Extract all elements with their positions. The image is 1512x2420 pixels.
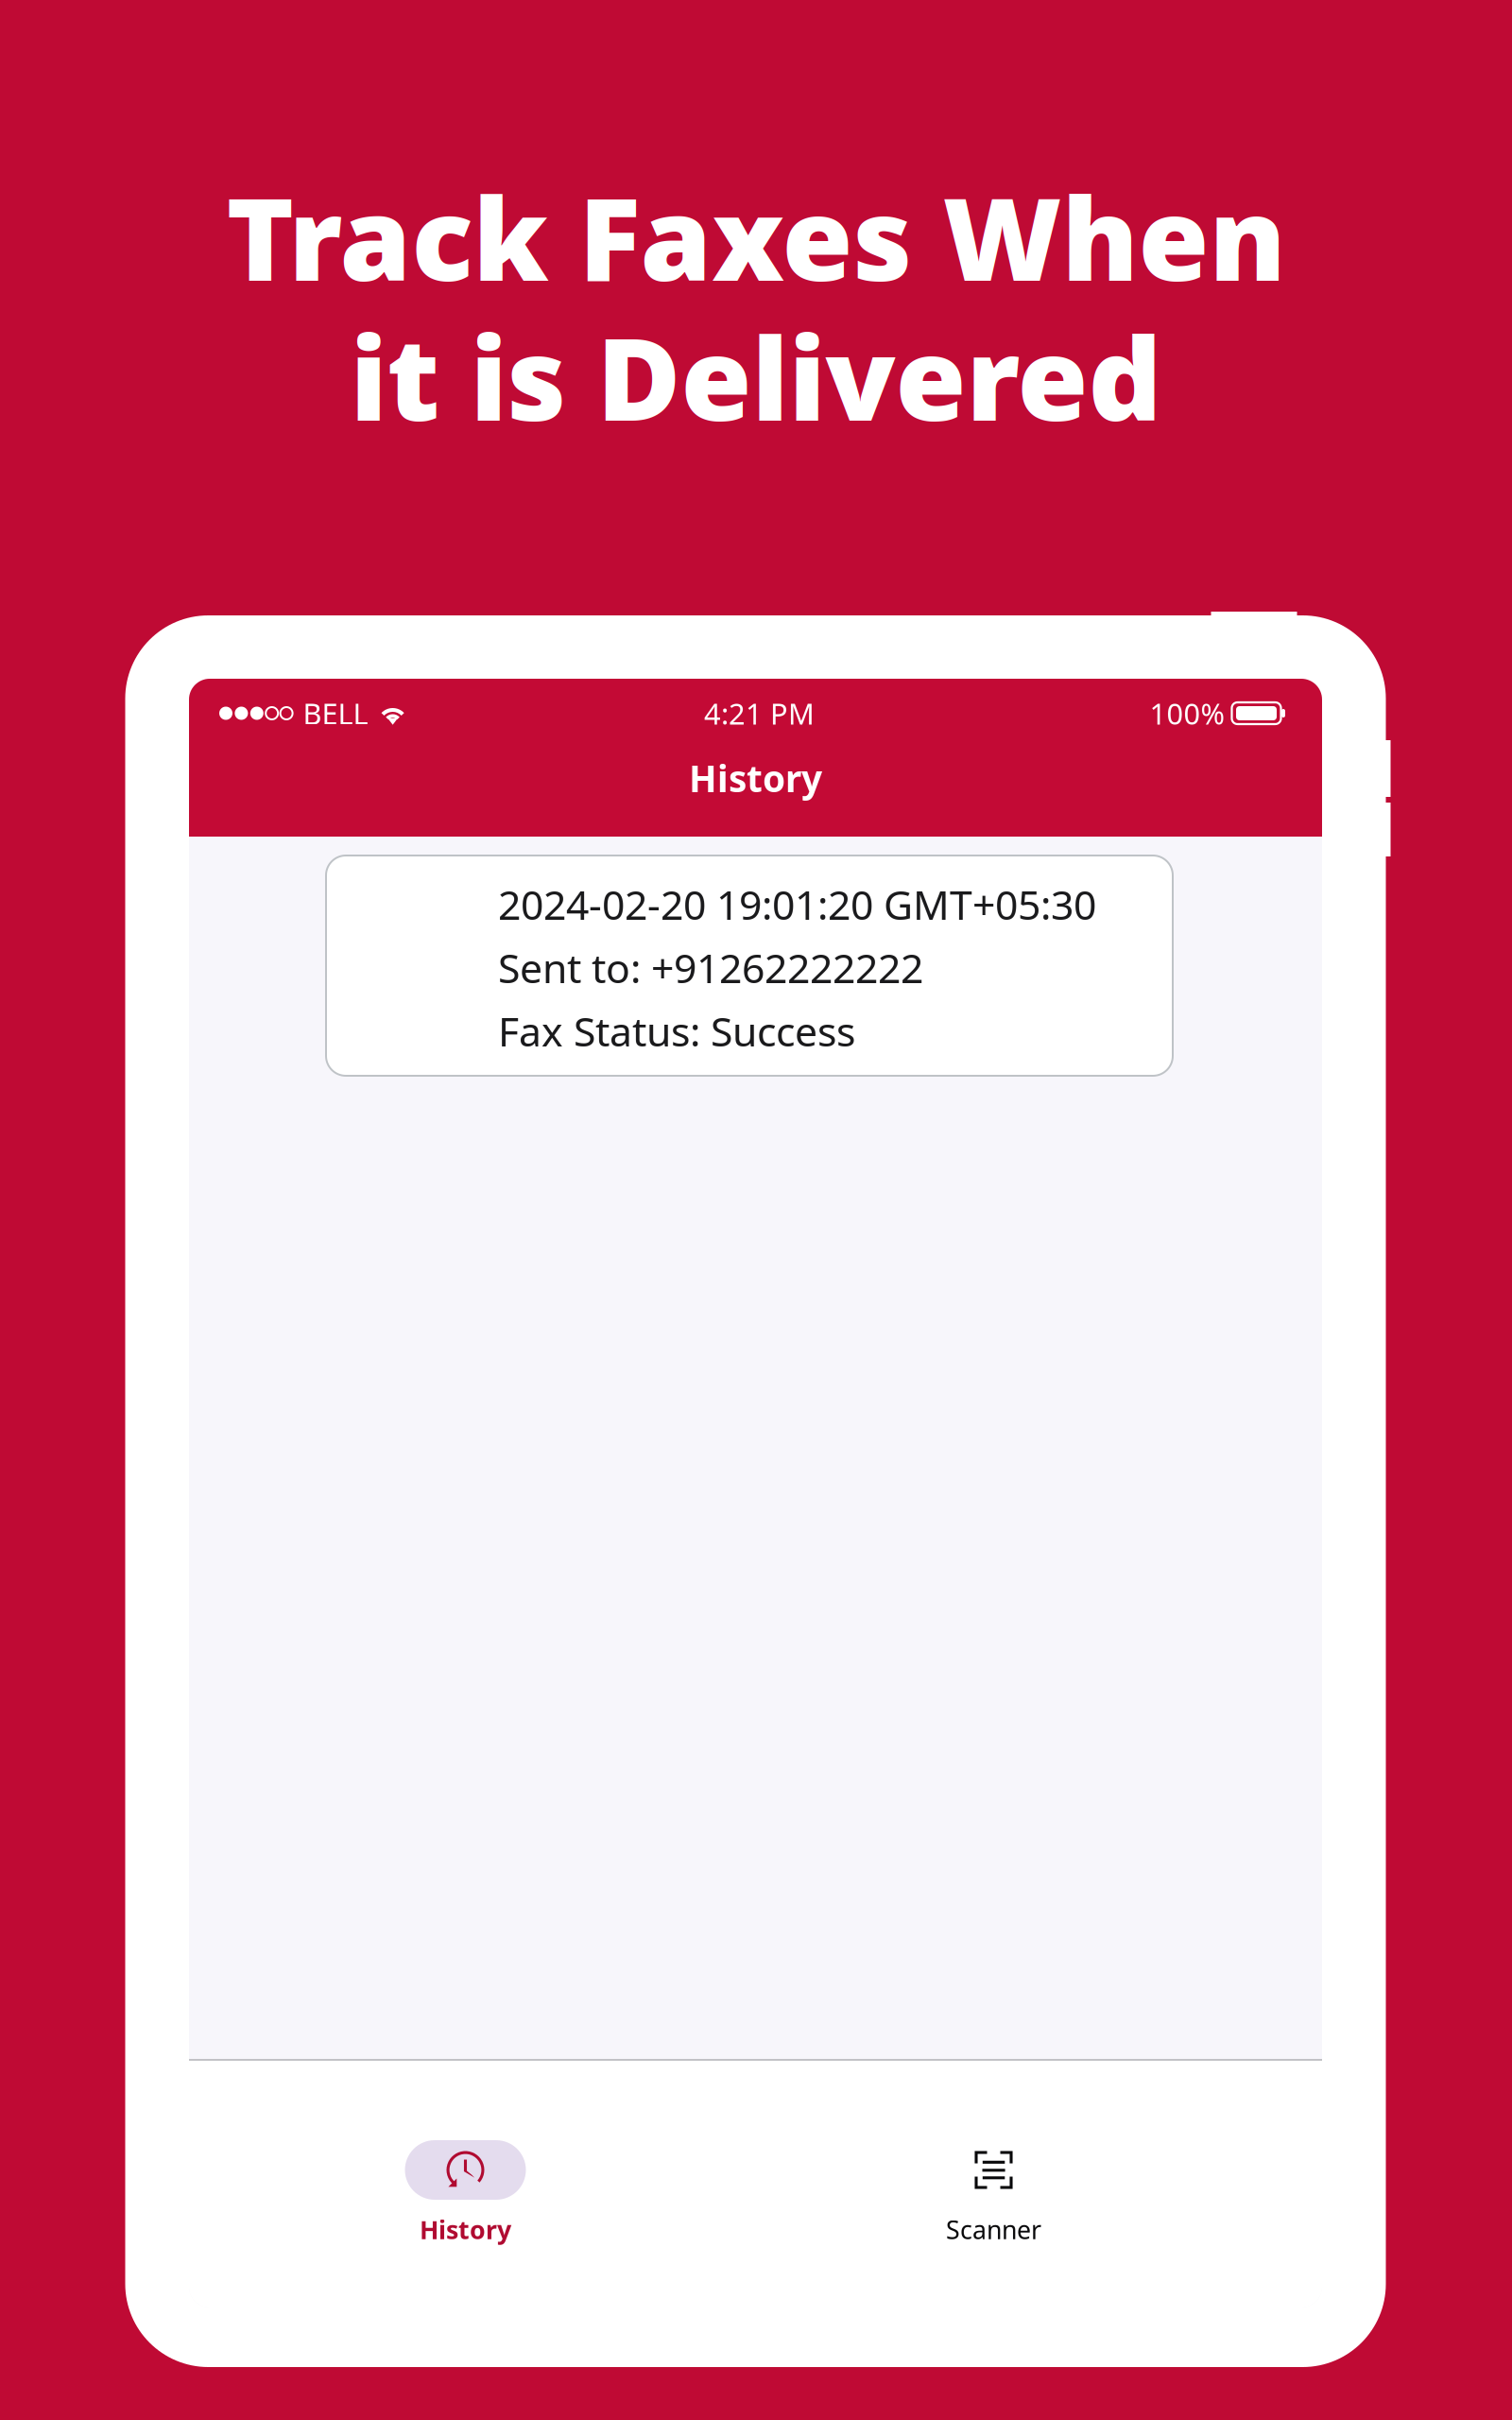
staticText: Sent to: +91262222222	[498, 941, 923, 994]
staticText: Track Faxes When	[226, 160, 1286, 312]
button[interactable]: History	[201, 2140, 730, 2244]
button[interactable]: Scanner	[730, 2140, 1258, 2244]
staticText: History	[420, 2213, 511, 2246]
staticText: Fax Status: Success	[498, 1004, 855, 1058]
staticText: Scanner	[946, 2213, 1041, 2246]
staticText: BELL	[303, 694, 368, 732]
staticText: History	[689, 754, 822, 802]
staticText: 100%	[1150, 694, 1224, 732]
staticText: it is Delivered	[350, 300, 1162, 452]
staticText: 2024-02-20 19:01:20 GMT+05:30	[498, 877, 1096, 931]
staticText: 4:21 PM	[704, 694, 815, 732]
button[interactable]: Fax sent 2024-02-20 19:01:20 GMT+05:30 t…	[326, 856, 1173, 1076]
